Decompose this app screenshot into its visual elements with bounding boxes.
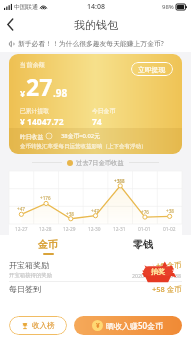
staticText: 01-01: [138, 226, 151, 233]
staticText: 27: [26, 71, 53, 102]
staticText: +76: [141, 209, 149, 215]
staticText: 昨日收益: [20, 133, 44, 140]
button[interactable]: 返回: [0, 14, 21, 35]
staticText: ¥ 14047.72: [20, 116, 64, 128]
staticText: +47: [17, 206, 25, 212]
staticText: ¥: [96, 321, 100, 330]
staticText: +6 金币: [156, 260, 182, 270]
staticText: 开宝箱奖励: [9, 260, 49, 270]
staticText: 我的钱包: [74, 18, 118, 32]
button[interactable]: 开宝箱奖励: [0, 257, 191, 281]
staticText: 12-31: [113, 226, 126, 233]
staticText: 每日签到: [9, 284, 41, 294]
staticText: 过去7日金币收益: [76, 158, 124, 167]
staticText: 开宝箱获得的奖励: [9, 272, 53, 279]
staticText: .98: [53, 86, 68, 100]
staticText: 12-27: [15, 226, 28, 233]
button[interactable]: 立即提现: [131, 62, 173, 76]
button[interactable]: 金币: [0, 235, 95, 257]
staticText: +176: [40, 195, 51, 201]
button[interactable]: 每日签到: [0, 282, 191, 296]
button[interactable]: 收入榜: [9, 316, 67, 335]
button[interactable]: 新手必看！！为什么很多趣友每天能赚上万金币?: [0, 35, 191, 52]
button[interactable]: ¥: [74, 316, 182, 335]
staticText: 74: [92, 116, 102, 128]
staticText: 收入榜: [32, 321, 55, 330]
staticText: 已累计提取: [20, 107, 49, 114]
staticText: 抽奖: [151, 267, 165, 276]
staticText: +38: [66, 211, 74, 217]
staticText: +58 金币: [152, 284, 182, 294]
staticText: 金币: [38, 238, 58, 251]
staticText: ¥: [20, 87, 26, 99]
staticText: 2020-01-02 14:07:38: [132, 272, 182, 279]
staticText: 中国联通: [14, 3, 38, 11]
staticText: 晒收入赚50金币: [106, 320, 164, 331]
staticText: 零钱: [133, 238, 153, 251]
staticText: 12-30: [88, 226, 101, 233]
staticText: 01-02: [163, 226, 176, 233]
button[interactable]: 零钱: [95, 235, 191, 257]
staticText: 12-28: [39, 226, 52, 233]
staticText: 当前余额: [20, 61, 45, 69]
staticText: 金币转换汇率受每日运营收益影响（上下会有浮动）: [20, 143, 147, 150]
staticText: 立即提现: [138, 65, 166, 74]
staticText: +388: [114, 178, 125, 184]
staticText: 98%: [162, 3, 174, 11]
staticText: 14:08: [87, 2, 105, 12]
staticText: +47: [91, 208, 99, 214]
staticText: +38: [166, 208, 174, 214]
staticText: 12-29: [63, 226, 76, 233]
staticText: 38金币=0.02元: [61, 132, 100, 140]
staticText: 新手必看！！为什么很多趣友每天能赚上万金币?: [18, 39, 164, 48]
staticText: 今日金币: [92, 107, 116, 114]
button[interactable]: 抽奖: [141, 259, 175, 283]
